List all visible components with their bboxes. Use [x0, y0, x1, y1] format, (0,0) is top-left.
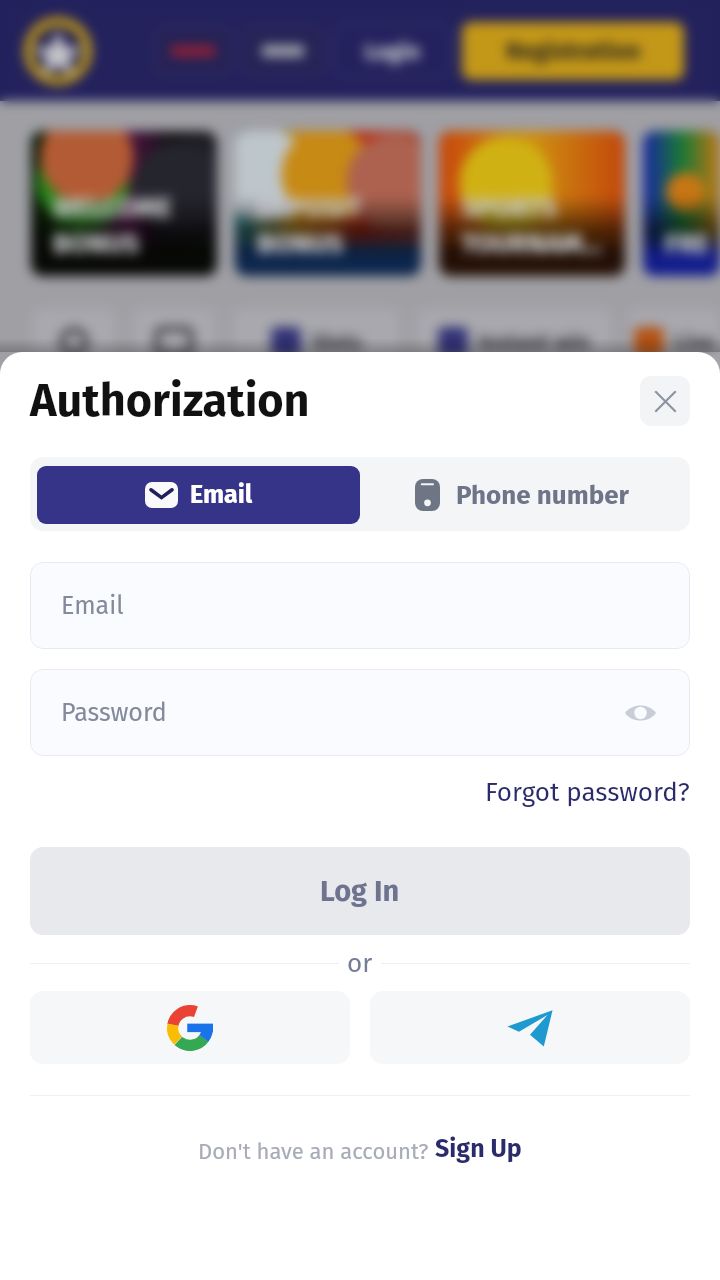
staticText: DEPOSIT — [257, 192, 362, 224]
staticText: TOURNAM... — [461, 228, 603, 260]
staticText: Email — [61, 591, 124, 621]
staticText: Phone number — [456, 480, 629, 511]
staticText: FRE — [665, 228, 710, 260]
button[interactable]: Sign in with Google — [30, 991, 350, 1064]
staticText: Instant win — [478, 329, 590, 355]
button[interactable]: Phone number — [360, 466, 683, 524]
button[interactable]: Password — [30, 669, 690, 756]
staticText: BONUS — [53, 228, 140, 260]
staticText: Authorization — [30, 374, 310, 428]
staticText: BONUS — [257, 228, 344, 260]
staticText: WELCOME — [53, 192, 172, 224]
staticText: Don't have an account? — [198, 1138, 435, 1164]
staticText: Live — [674, 329, 715, 355]
button[interactable]: Sign in with Telegram — [370, 991, 690, 1064]
button[interactable]: Show password — [620, 693, 660, 733]
staticText: Log In — [320, 874, 400, 909]
button[interactable]: Email — [30, 562, 690, 649]
button[interactable]: Close — [640, 376, 690, 426]
staticText: Registration — [506, 37, 641, 66]
staticText: Login — [365, 38, 420, 64]
staticText: Slots — [311, 329, 362, 355]
button[interactable]: Sign Up — [435, 1134, 522, 1164]
staticText: Email — [190, 480, 253, 510]
staticText: or — [347, 948, 373, 978]
staticText: SPORTS — [461, 192, 557, 224]
staticText: Password — [61, 698, 167, 728]
button[interactable]: Log In — [30, 847, 690, 935]
button[interactable]: Forgot password? — [485, 777, 690, 808]
button[interactable]: Email — [37, 466, 360, 524]
